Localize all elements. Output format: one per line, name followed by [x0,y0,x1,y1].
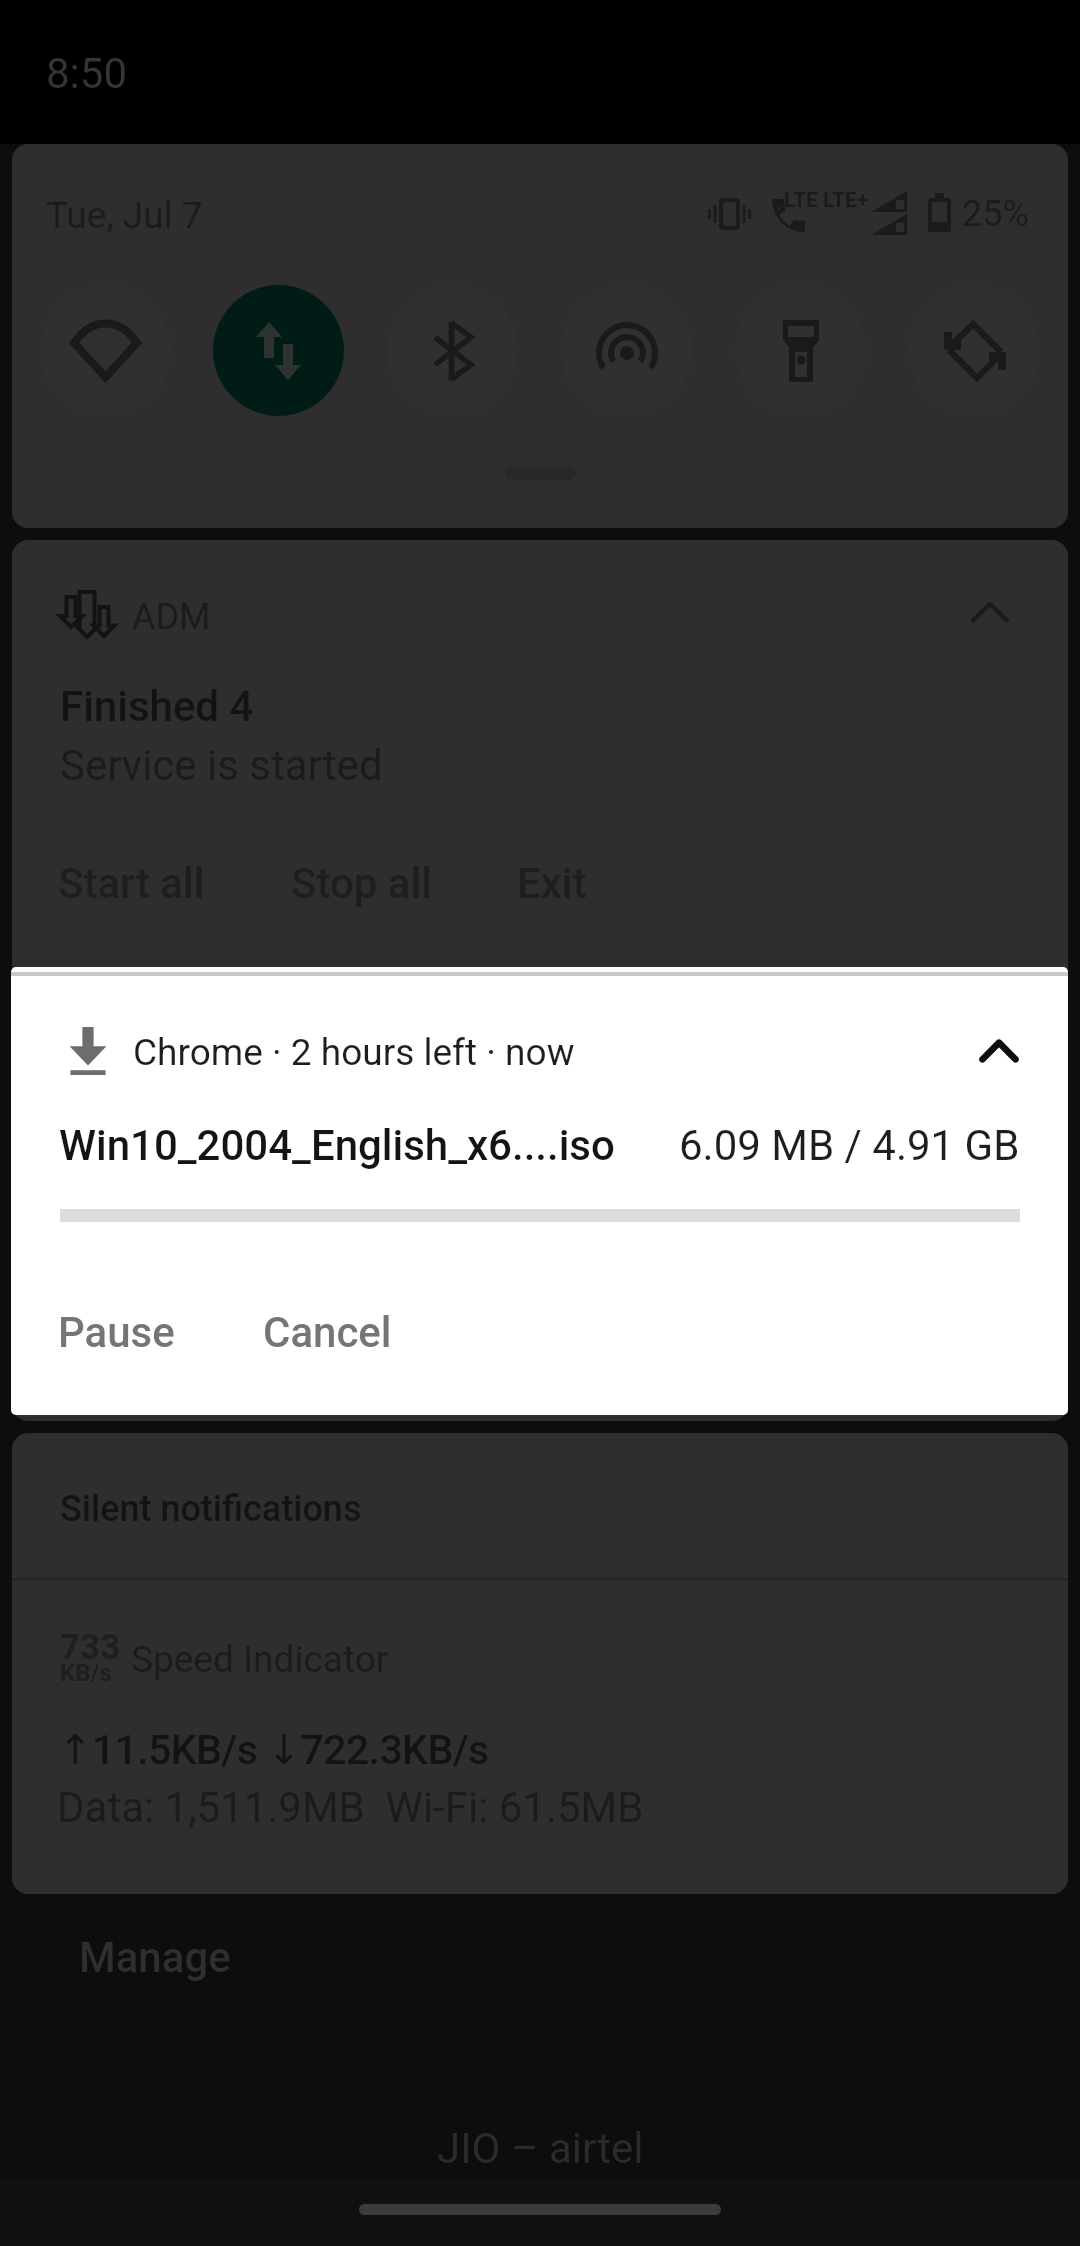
button[interactable]: Hotspot [561,285,692,416]
staticText: Service is started [60,741,383,790]
button[interactable]: Collapse ADM notification [962,584,1018,640]
button[interactable]: Mobile data [213,285,344,416]
staticText: 25% [962,193,1029,235]
staticText: Finished 4 [60,682,254,731]
button[interactable]: Wi-Fi [40,285,171,416]
staticText: Win10_2004_English_x6....iso [59,1121,615,1170]
button[interactable]: Pause [58,1308,175,1357]
staticText: Stop all [291,859,432,908]
staticText: Exit [517,859,587,908]
button[interactable]: Flashlight [735,285,866,416]
staticText: JIO – airtel [437,2124,644,2173]
button[interactable]: Stop all [291,859,432,908]
staticText: Data: 1,511.9MB Wi-Fi: 61.5MB [57,1783,644,1832]
staticText: Tue, Jul 7 [46,194,203,237]
button[interactable]: Manage [79,1933,231,1982]
staticText: 733 [60,1627,121,1668]
button[interactable]: Exit [517,859,587,908]
staticText: ADM [132,596,211,638]
staticText: Cancel [263,1308,392,1357]
staticText: Silent notifications [60,1488,362,1530]
button[interactable]: Start all [58,859,205,908]
staticText: LTE [784,188,818,213]
button[interactable]: Bluetooth [387,285,518,416]
staticText: 8:50 [46,49,127,98]
staticText: Pause [58,1308,175,1357]
staticText: KB/s [60,1659,112,1687]
staticText: Speed Indicator [131,1638,389,1681]
staticText: 6.09 MB / 4.91 GB [679,1121,1020,1170]
button[interactable]: Cancel [263,1308,392,1357]
button[interactable]: Auto rotate [909,285,1040,416]
staticText: ↑11.5KB/s ↓722.3KB/s [58,1726,489,1774]
button[interactable]: Collapse download notification [971,1023,1027,1079]
staticText: Manage [79,1933,231,1982]
staticText: Chrome · 2 hours left · now [133,1031,575,1074]
staticText: LTE+ [823,188,869,213]
staticText: Start all [58,859,205,908]
